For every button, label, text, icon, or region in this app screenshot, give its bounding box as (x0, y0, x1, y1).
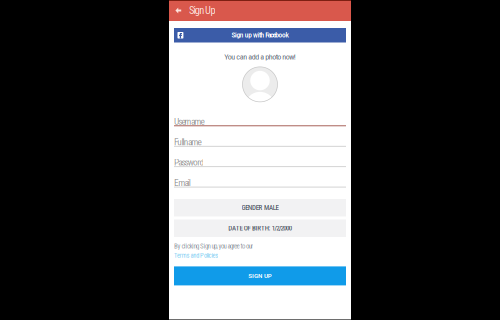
staticText: Terms and Policies (174, 252, 218, 259)
staticText: Sign up with Facebook (231, 31, 288, 39)
button[interactable]: DATE OF BIRTH: 1/2/2000 (174, 219, 346, 237)
staticText: Sign Up (189, 4, 215, 17)
button[interactable]: GENDER MALE (174, 199, 346, 216)
staticText: GENDER MALE (241, 204, 278, 212)
staticText: Fullname (174, 136, 201, 147)
staticText: Username (174, 116, 204, 127)
staticText: Email (174, 177, 191, 188)
staticText: By clicking Sign up, you agree to our (174, 242, 253, 250)
button[interactable]: Sign up with Facebook (174, 28, 346, 42)
staticText: SIGN UP (248, 272, 272, 279)
staticText: DATE OF BIRTH: 1/2/2000 (228, 224, 292, 232)
button[interactable]: Terms and Policies (174, 252, 218, 259)
button[interactable]: SIGN UP (174, 266, 346, 285)
button[interactable]: Add a photo (242, 67, 277, 102)
staticText: Password (174, 157, 204, 168)
button[interactable]: Back (172, 0, 185, 21)
staticText: You can add a photo now! (224, 52, 296, 61)
